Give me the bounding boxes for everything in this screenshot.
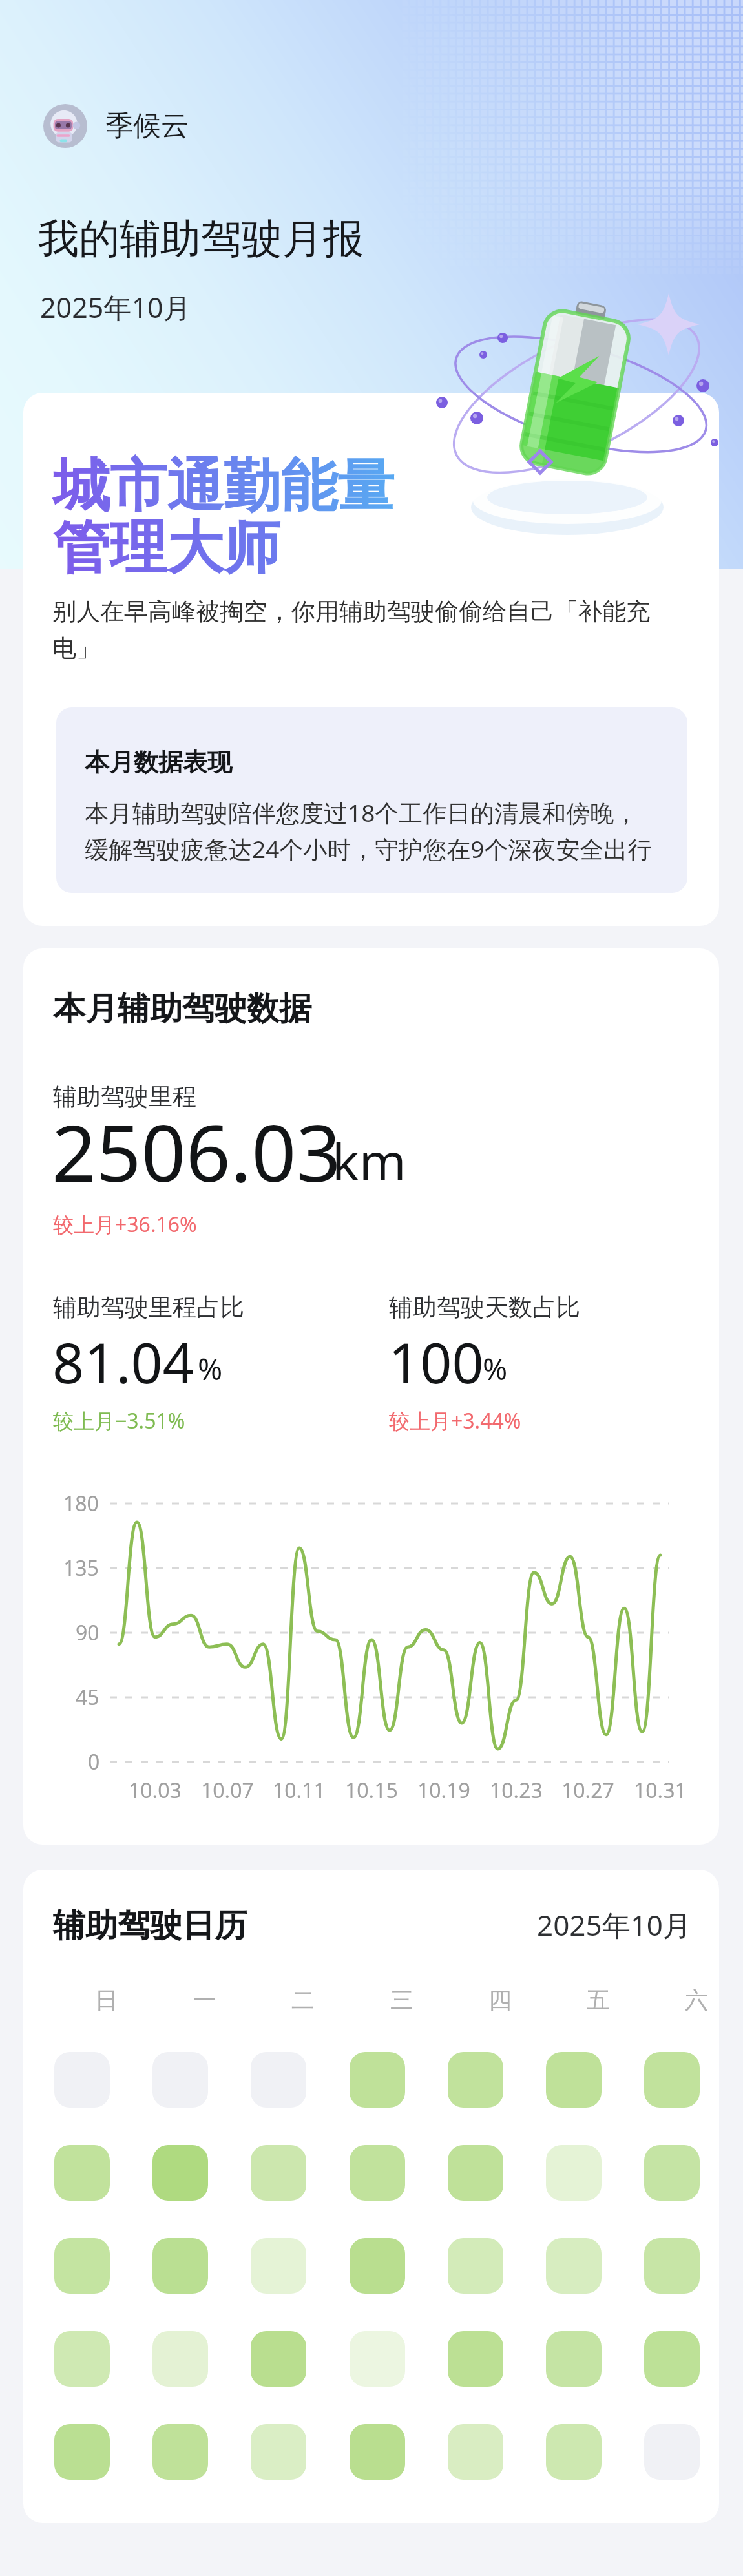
staticText: 辅助驾驶天数占比 xyxy=(389,1292,580,1323)
button[interactable] xyxy=(251,2238,306,2294)
staticText: 管理大师 xyxy=(53,512,280,584)
staticText: km xyxy=(332,1127,406,1195)
staticText: 季候云 xyxy=(105,109,189,143)
button[interactable] xyxy=(350,2331,405,2387)
staticText: 10.27 xyxy=(561,1776,614,1805)
staticText: 六 xyxy=(685,1985,708,2015)
staticText: 辅助驾驶日历 xyxy=(53,1905,247,1946)
staticText: 45 xyxy=(76,1683,99,1712)
staticText: 城市通勤能量 xyxy=(53,450,394,522)
staticText: 10.15 xyxy=(345,1776,398,1805)
button[interactable] xyxy=(350,2238,405,2294)
staticText: 2025年10月 xyxy=(40,288,191,326)
staticText: 10.19 xyxy=(417,1776,470,1805)
staticText: 本月辅助驾驶数据 xyxy=(53,989,311,1029)
button[interactable] xyxy=(152,2145,208,2201)
staticText: 较上月+36.16% xyxy=(53,1210,197,1239)
button[interactable] xyxy=(54,2424,110,2480)
button[interactable] xyxy=(448,2424,503,2480)
button[interactable] xyxy=(644,2238,700,2294)
staticText: 100 xyxy=(388,1324,484,1399)
staticText: 本月数据表现 xyxy=(85,747,232,778)
staticText: 0 xyxy=(88,1748,100,1776)
button[interactable] xyxy=(644,2052,700,2108)
staticText: % xyxy=(483,1348,508,1389)
button[interactable] xyxy=(251,2145,306,2201)
button[interactable] xyxy=(448,2238,503,2294)
staticText: 81.04 xyxy=(52,1324,194,1399)
staticText: 本月辅助驾驶陪伴您度过18个工作日的清晨和傍晚，缓解驾驶疲惫达24个小时，守护您… xyxy=(85,796,660,865)
button[interactable]: Profile avatar xyxy=(43,104,87,148)
button[interactable] xyxy=(448,2145,503,2201)
staticText: 五 xyxy=(587,1985,610,2015)
button[interactable] xyxy=(152,2331,208,2387)
button[interactable] xyxy=(448,2331,503,2387)
staticText: 我的辅助驾驶月报 xyxy=(38,213,364,264)
staticText: 10.31 xyxy=(634,1776,687,1805)
button[interactable] xyxy=(251,2424,306,2480)
staticText: 90 xyxy=(76,1618,99,1647)
staticText: 2025年10月 xyxy=(537,1905,692,1944)
button[interactable] xyxy=(251,2052,306,2108)
button[interactable] xyxy=(546,2238,602,2294)
button[interactable] xyxy=(350,2424,405,2480)
button[interactable] xyxy=(448,2052,503,2108)
staticText: 10.11 xyxy=(273,1776,326,1805)
button[interactable] xyxy=(644,2145,700,2201)
staticText: 10.03 xyxy=(129,1776,182,1805)
button[interactable] xyxy=(251,2331,306,2387)
button[interactable] xyxy=(54,2238,110,2294)
staticText: 辅助驾驶里程占比 xyxy=(53,1292,244,1323)
staticText: % xyxy=(198,1348,223,1389)
staticText: 2506.03 xyxy=(52,1098,341,1205)
button[interactable] xyxy=(54,2052,110,2108)
button[interactable] xyxy=(350,2052,405,2108)
button[interactable] xyxy=(546,2331,602,2387)
button[interactable] xyxy=(54,2145,110,2201)
button[interactable] xyxy=(152,2424,208,2480)
staticText: 四 xyxy=(488,1985,512,2015)
staticText: 135 xyxy=(63,1554,99,1582)
button[interactable] xyxy=(546,2052,602,2108)
staticText: 10.23 xyxy=(490,1776,543,1805)
button[interactable] xyxy=(350,2145,405,2201)
button[interactable] xyxy=(644,2331,700,2387)
button[interactable] xyxy=(546,2424,602,2480)
staticText: 较上月−3.51% xyxy=(53,1407,185,1435)
button[interactable] xyxy=(644,2424,700,2480)
button[interactable] xyxy=(152,2052,208,2108)
staticText: 较上月+3.44% xyxy=(389,1407,521,1435)
staticText: 三 xyxy=(390,1985,413,2015)
staticText: 别人在早高峰被掏空，你用辅助驾驶偷偷给自己「补能充电」 xyxy=(52,596,660,664)
staticText: 180 xyxy=(63,1489,99,1518)
staticText: 日 xyxy=(95,1985,118,2015)
button[interactable] xyxy=(546,2145,602,2201)
staticText: 10.07 xyxy=(201,1776,254,1805)
staticText: 辅助驾驶里程 xyxy=(53,1082,196,1112)
button[interactable] xyxy=(54,2331,110,2387)
staticText: 一 xyxy=(193,1985,216,2015)
button[interactable]: Profile avatar xyxy=(43,104,189,148)
staticText: 二 xyxy=(291,1985,315,2015)
button[interactable] xyxy=(152,2238,208,2294)
